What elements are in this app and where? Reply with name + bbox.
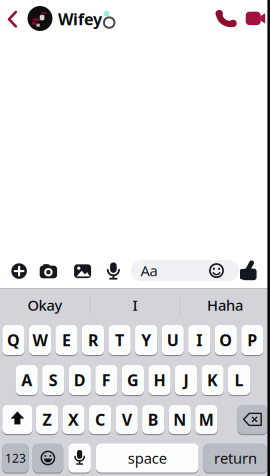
button[interactable]: Y <box>135 325 157 357</box>
button[interactable]: D <box>69 365 91 397</box>
staticText: I <box>196 329 202 351</box>
button[interactable]: F <box>95 365 117 397</box>
staticText: I <box>132 295 137 315</box>
staticText: Haha <box>207 295 243 315</box>
button[interactable]: G <box>122 365 144 397</box>
button[interactable]: Z <box>36 405 58 436</box>
staticText: Aa <box>140 261 157 280</box>
button[interactable]: V <box>116 405 138 436</box>
staticText: P <box>247 329 257 351</box>
button[interactable] <box>11 263 27 279</box>
button[interactable]: X <box>62 405 85 436</box>
button[interactable]: M <box>195 405 217 436</box>
staticText: O <box>219 329 232 351</box>
button[interactable]: K <box>201 365 224 397</box>
staticText: G <box>127 369 139 391</box>
button[interactable] <box>2 405 32 436</box>
staticText: space <box>128 448 167 468</box>
button[interactable]: I <box>100 293 170 317</box>
staticText: Y <box>141 329 151 351</box>
staticText: D <box>74 369 86 391</box>
button[interactable] <box>239 259 261 281</box>
staticText: J <box>183 369 188 391</box>
button[interactable] <box>106 261 121 281</box>
button[interactable]: H <box>148 365 170 397</box>
staticText: W <box>32 329 47 351</box>
button[interactable]: O <box>215 325 237 357</box>
staticText: Wifey <box>58 8 102 30</box>
button[interactable] <box>244 10 267 26</box>
staticText: N <box>173 409 186 430</box>
staticText: T <box>115 329 124 351</box>
staticText: L <box>235 369 244 391</box>
button[interactable]: C <box>89 405 111 436</box>
button[interactable]: return <box>203 443 267 474</box>
staticText: Q <box>7 329 20 351</box>
staticText: H <box>153 369 165 391</box>
button[interactable]: R <box>82 325 104 357</box>
button[interactable]: Okay <box>10 293 80 317</box>
staticText: 123 <box>5 450 26 466</box>
staticText: E <box>62 329 71 351</box>
button[interactable]: L <box>228 365 250 397</box>
button[interactable]: P <box>241 325 263 357</box>
button[interactable]: I <box>188 325 210 357</box>
button[interactable]: 123 <box>2 443 29 474</box>
button[interactable]: N <box>169 405 191 436</box>
staticText: B <box>148 409 159 430</box>
button[interactable] <box>68 443 91 474</box>
staticText: C <box>95 409 105 430</box>
staticText: S <box>49 369 58 391</box>
button[interactable]: Aa <box>131 260 239 281</box>
button[interactable]: S <box>42 365 64 397</box>
button[interactable] <box>102 10 120 31</box>
staticText: Okay <box>27 295 62 315</box>
button[interactable]: E <box>55 325 78 357</box>
button[interactable] <box>33 443 63 474</box>
button[interactable] <box>27 6 52 31</box>
button[interactable]: B <box>142 405 164 436</box>
staticText: M <box>199 409 214 430</box>
button[interactable]: Wifey <box>58 8 102 30</box>
staticText: A <box>21 369 32 391</box>
staticText: X <box>68 409 79 430</box>
staticText: K <box>207 369 218 391</box>
staticText: U <box>167 329 179 351</box>
button[interactable]: Haha <box>190 293 260 317</box>
button[interactable] <box>73 263 92 279</box>
staticText: Z <box>42 409 51 430</box>
button[interactable]: J <box>175 365 197 397</box>
button[interactable]: Q <box>2 325 24 357</box>
staticText: R <box>88 329 98 351</box>
button[interactable] <box>39 262 58 279</box>
button[interactable] <box>5 9 20 29</box>
button[interactable]: space <box>96 443 198 474</box>
button[interactable]: A <box>16 365 38 397</box>
button[interactable]: T <box>108 325 131 357</box>
button[interactable]: U <box>162 325 184 357</box>
staticText: V <box>122 409 132 430</box>
button[interactable] <box>237 405 268 436</box>
staticText: F <box>102 369 111 391</box>
button[interactable] <box>213 7 237 29</box>
staticText: return <box>214 448 257 468</box>
button[interactable]: W <box>29 325 51 357</box>
